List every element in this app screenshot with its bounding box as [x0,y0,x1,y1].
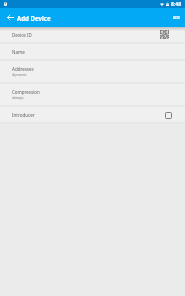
staticText: Compression [12,89,40,95]
staticText: dynamic [12,72,27,77]
staticText: Add Device [17,14,51,22]
staticText: always [12,95,24,100]
button[interactable]: Back [6,13,15,22]
button[interactable]: ADD [173,16,180,20]
staticText: Name [12,49,25,55]
staticText: 8:48 [171,1,181,8]
button[interactable]: Compression [0,84,185,105]
button[interactable]: Device ID [0,27,185,42]
button[interactable]: Introducer checkbox [162,109,174,121]
staticText: Addresses [12,66,34,72]
button[interactable]: Introducer [0,107,185,122]
button[interactable]: Scan QR code [160,30,169,39]
button[interactable]: Addresses [0,61,185,82]
staticText: Introducer [12,112,35,118]
staticText: ADD [173,16,180,20]
button[interactable]: Name [0,44,185,59]
staticText: Device ID [12,32,32,38]
